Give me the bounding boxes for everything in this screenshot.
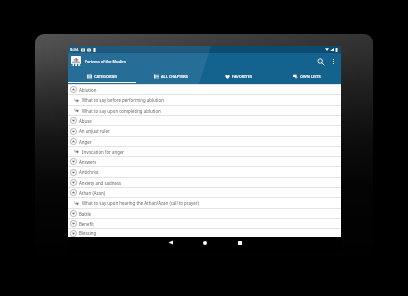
staticText: Anger — [79, 139, 92, 145]
staticText: FAVORITES — [232, 74, 253, 79]
staticText: Fortress of the Muslim — [85, 59, 127, 64]
staticText: ALL CHAPTERS — [161, 74, 188, 79]
staticText: An unjust ruler — [79, 128, 110, 134]
button[interactable]: CATEGORIES — [68, 69, 137, 84]
staticText: Battle — [79, 211, 92, 217]
staticText: Anxiety and sadness — [79, 180, 122, 186]
button[interactable]: Benefit — [68, 219, 341, 228]
button[interactable]: What to say upon completing ablution — [68, 106, 341, 115]
staticText: What to say upon completing ablution — [82, 108, 161, 114]
staticText: OWN LISTS — [300, 74, 321, 79]
button[interactable]: Search — [314, 55, 327, 68]
staticText: Benefit — [79, 221, 94, 227]
button[interactable]: Anxiety and sadness — [68, 178, 341, 187]
button[interactable]: Ablution — [68, 85, 341, 94]
button[interactable]: Antichrist — [68, 167, 341, 177]
button[interactable]: Recents — [232, 237, 248, 248]
staticText: Abuse — [79, 118, 92, 124]
button[interactable]: Invocation for anger — [68, 147, 341, 156]
button[interactable]: Battle — [68, 209, 341, 218]
button[interactable]: ALL CHAPTERS — [137, 69, 205, 84]
button[interactable]: Athan (Azan) — [68, 188, 341, 197]
button[interactable]: Answers — [68, 157, 341, 166]
button[interactable]: Blessing — [68, 229, 341, 237]
button[interactable]: Abuse — [68, 116, 341, 125]
button[interactable]: Back — [162, 237, 178, 248]
staticText: What to say upon hearing the Athan/Azan … — [82, 200, 199, 206]
button[interactable]: An unjust ruler — [68, 126, 341, 136]
staticText: 8:34 — [70, 47, 79, 53]
button[interactable]: What to say before performing ablution — [68, 95, 341, 105]
button[interactable]: Home — [197, 237, 213, 248]
staticText: What to say before performing ablution — [82, 97, 164, 103]
button[interactable]: What to say upon hearing the Athan/Azan … — [68, 198, 341, 208]
button[interactable]: FAVORITES — [205, 69, 273, 84]
staticText: Answers — [79, 159, 97, 165]
staticText: Athan (Azan) — [79, 190, 106, 196]
staticText: Antichrist — [79, 169, 99, 175]
button[interactable]: More options — [328, 56, 339, 67]
staticText: Invocation for anger — [82, 149, 125, 155]
button[interactable]: OWN LISTS — [273, 69, 341, 84]
staticText: Blessing — [79, 230, 97, 236]
staticText: CATEGORIES — [94, 74, 118, 79]
button[interactable]: Anger — [68, 137, 341, 146]
staticText: Ablution — [79, 87, 97, 93]
